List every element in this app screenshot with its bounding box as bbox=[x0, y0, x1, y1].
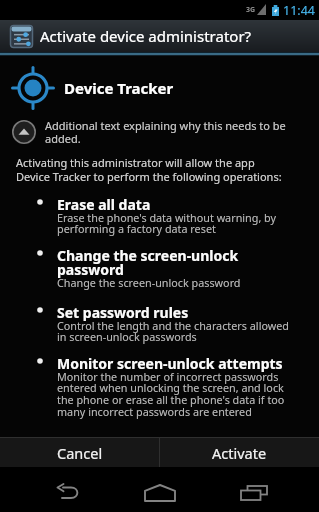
button[interactable] bbox=[0, 467, 107, 512]
staticText: Additional text explaining why this need… bbox=[45, 118, 286, 146]
staticText: Change the screen-unlock password bbox=[57, 246, 239, 279]
staticText: 11:44 bbox=[283, 2, 315, 19]
staticText: Monitor the number of incorrect password… bbox=[57, 369, 285, 420]
staticText: Activate device administrator? bbox=[40, 26, 252, 46]
staticText: Erase all data bbox=[57, 195, 151, 214]
staticText: Change the screen-unlock password bbox=[57, 275, 241, 290]
staticText: Erase the phone's data without warning, … bbox=[57, 210, 277, 237]
staticText: 3G bbox=[246, 5, 256, 15]
staticText: Cancel bbox=[57, 443, 103, 463]
button[interactable]: Additional text explaining why this need… bbox=[12, 118, 319, 146]
staticText: Activate bbox=[212, 443, 267, 463]
button[interactable] bbox=[213, 467, 319, 512]
staticText: Monitor screen-unlock attempts bbox=[57, 354, 283, 373]
staticText: Set password rules bbox=[57, 303, 189, 322]
staticText: Control the length and the characters al… bbox=[57, 318, 289, 345]
button[interactable]: Activate bbox=[160, 438, 319, 467]
staticText: Activating this administrator will allow… bbox=[16, 155, 282, 184]
button[interactable] bbox=[107, 467, 213, 512]
staticText: Device Tracker bbox=[64, 78, 174, 98]
button[interactable]: Cancel bbox=[0, 438, 159, 467]
